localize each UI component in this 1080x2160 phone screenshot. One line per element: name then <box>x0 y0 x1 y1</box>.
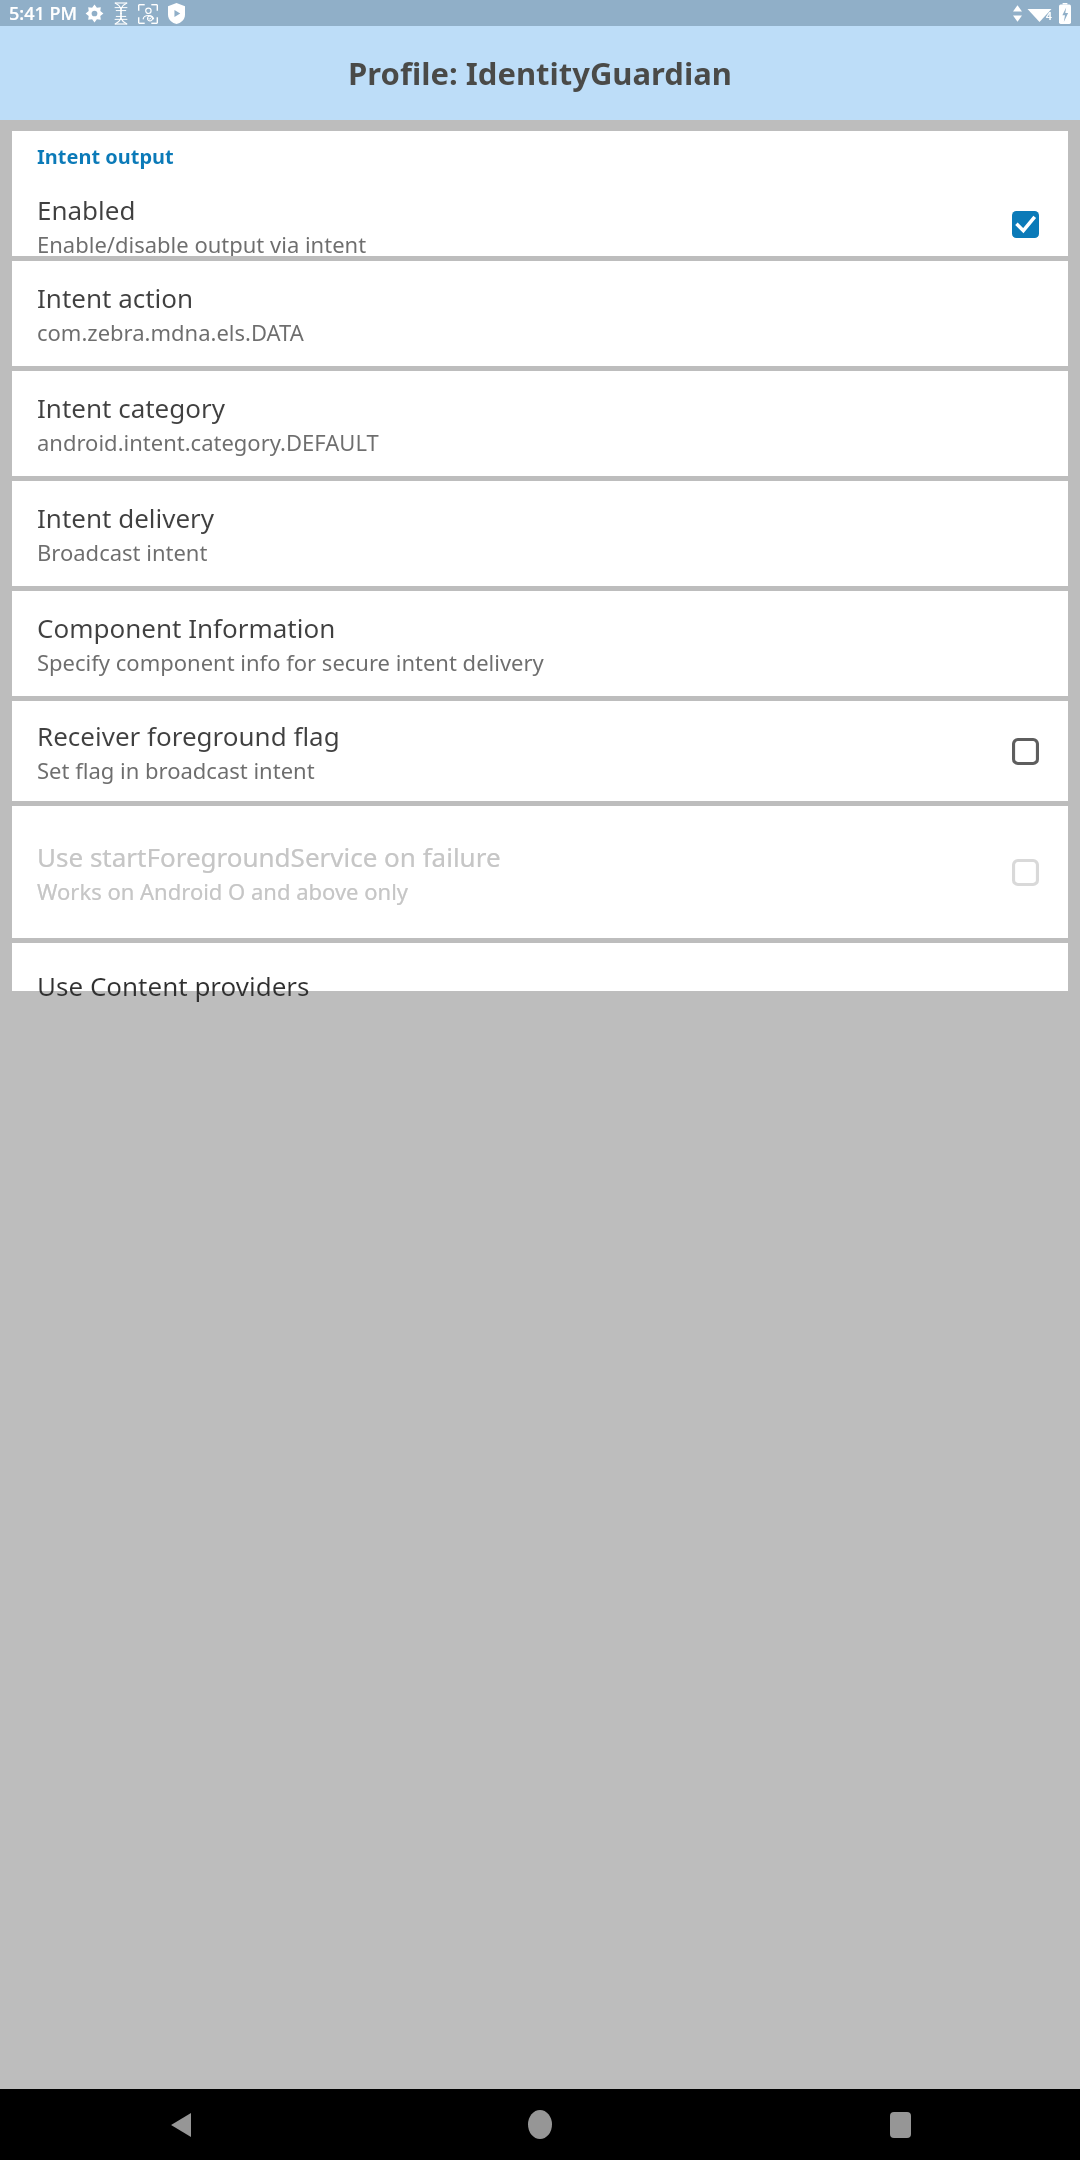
staticText: Intent output <box>37 143 174 170</box>
button[interactable]: Toggle Enabled <box>1002 201 1048 247</box>
button[interactable]: Home <box>360 2089 720 2160</box>
staticText: Intent action <box>37 280 194 315</box>
staticText: 5:41 PM <box>9 1 77 26</box>
button[interactable]: Recent apps <box>720 2089 1080 2160</box>
staticText: Use Content providers <box>37 968 310 1003</box>
staticText: Use startForegroundService on failure <box>37 839 501 874</box>
button[interactable]: Toggle Use startForegroundService on fai… <box>1002 849 1048 895</box>
button[interactable]: Enabled <box>12 192 1068 256</box>
staticText: com.zebra.mdna.els.DATA <box>37 317 304 347</box>
staticText: Receiver foreground flag <box>37 718 340 753</box>
staticText: Enable/disable output via intent <box>37 229 367 256</box>
staticText: 4 <box>1046 9 1052 23</box>
button[interactable]: Intent category <box>12 371 1068 476</box>
button[interactable]: Back <box>0 2089 360 2160</box>
button[interactable]: Toggle Receiver foreground flag <box>1002 728 1048 774</box>
button[interactable]: Intent action <box>12 261 1068 366</box>
button[interactable]: Use startForegroundService on failure <box>12 806 1068 938</box>
staticText: Component Information <box>37 610 336 645</box>
staticText: Specify component info for secure intent… <box>37 647 544 677</box>
button[interactable]: Component Information <box>12 591 1068 696</box>
staticText: android.intent.category.DEFAULT <box>37 427 379 457</box>
staticText: Intent delivery <box>37 500 215 535</box>
staticText: Enabled <box>37 192 136 227</box>
button[interactable]: Intent delivery <box>12 481 1068 586</box>
staticText: Set flag in broadcast intent <box>37 755 315 785</box>
button[interactable]: Receiver foreground flag <box>12 701 1068 801</box>
staticText: Broadcast intent <box>37 537 208 567</box>
staticText: Profile: IdentityGuardian <box>348 52 732 94</box>
staticText: Works on Android O and above only <box>37 876 409 906</box>
staticText: Intent category <box>37 390 225 425</box>
